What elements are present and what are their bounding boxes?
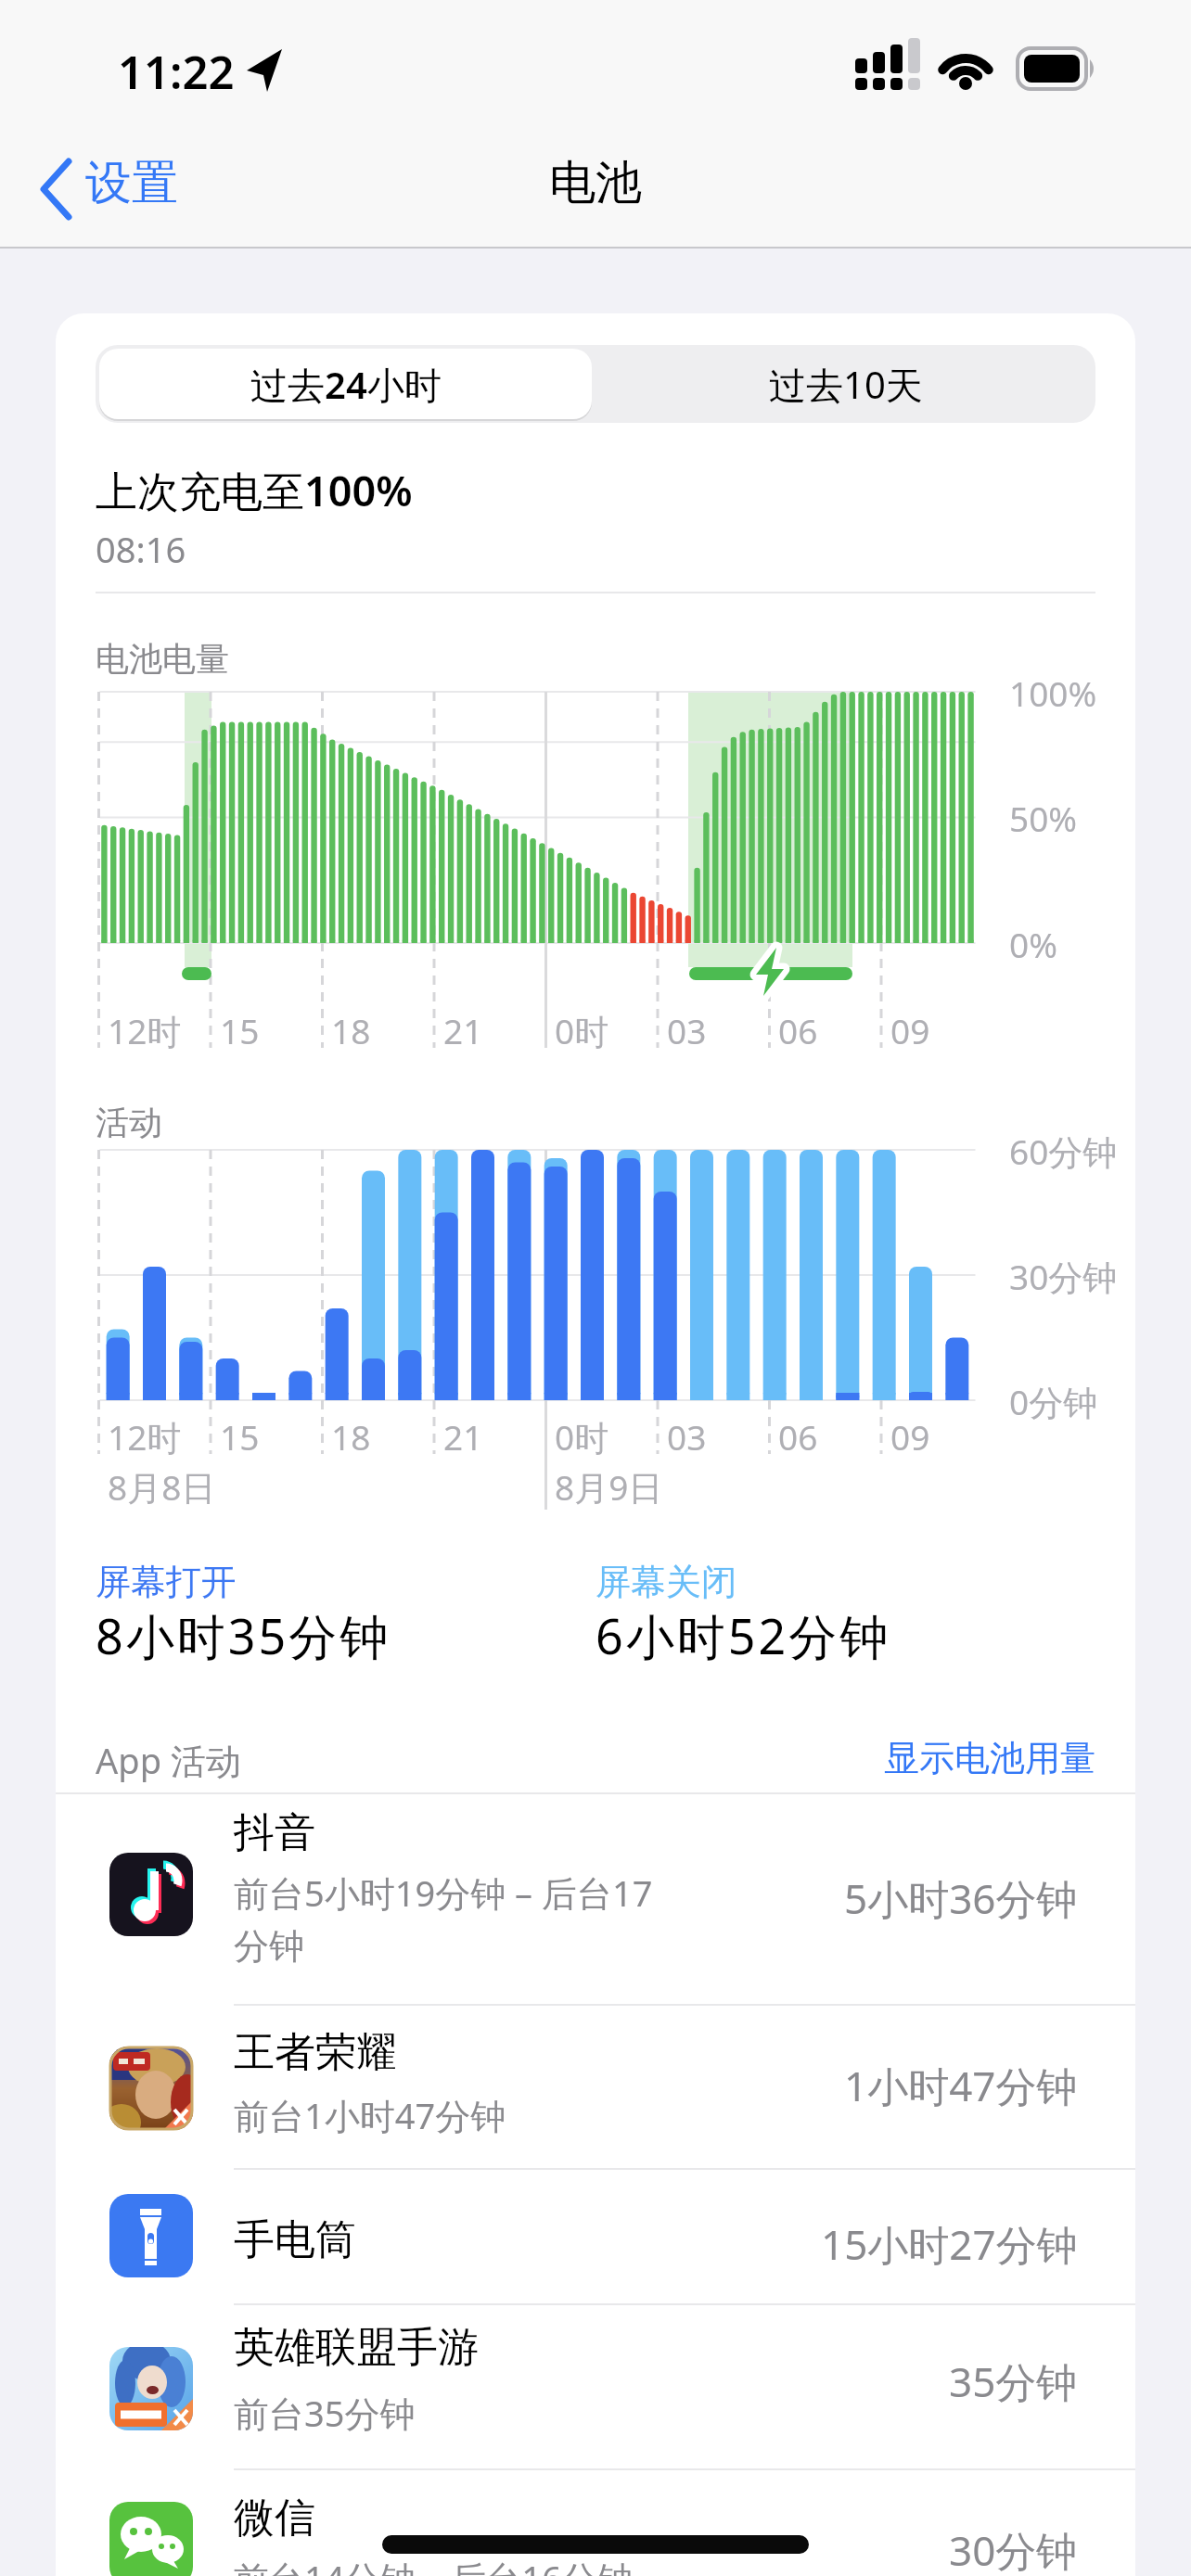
staticText: 过去24小时 [250,359,442,410]
staticText: 前台14分钟 – 后台16分钟 [234,2554,633,2576]
staticText: 21 [443,1007,483,1053]
staticText: 15 [220,1007,260,1053]
staticText: 屏幕关闭 [595,1560,736,1604]
staticText: 前台1小时47分钟 [234,2091,506,2139]
staticText: 8月8日 [108,1463,216,1511]
staticText: 活动 [96,1102,162,1143]
button[interactable]: 王者荣耀 [56,2006,1135,2168]
staticText: 0% [1009,921,1057,967]
staticText: 06 [778,1007,818,1053]
staticText: 分钟 [234,1924,304,1969]
button[interactable]: 英雄联盟手游 [56,2305,1135,2467]
button[interactable]: 微信 [56,2470,1135,2576]
staticText: 18 [331,1007,371,1053]
staticText: 6小时52分钟 [595,1602,891,1668]
staticText: 屏幕打开 [96,1560,237,1604]
staticText: App 活动 [96,1736,241,1784]
button[interactable]: 过去24小时 [96,345,595,423]
staticText: 0时 [555,1413,609,1460]
staticText: 15小时27分钟 [821,2216,1078,2272]
staticText: 设置 [85,154,178,212]
staticText: 03 [667,1007,707,1053]
staticText: 21 [443,1413,483,1460]
staticText: 06 [778,1413,818,1460]
staticText: 上次充电至100% [96,462,413,518]
staticText: 0时 [555,1007,609,1054]
staticText: 王者荣耀 [234,2027,397,2078]
staticText: 1小时47分钟 [844,2058,1078,2113]
staticText: 手电筒 [234,2214,356,2265]
staticText: 18 [331,1413,371,1460]
staticText: 微信 [234,2493,315,2544]
staticText: 抖音 [234,1807,315,1858]
staticText: 电池电量 [96,638,229,680]
button[interactable]: 显示电池用量 [724,1736,1095,1782]
staticText: 英雄联盟手游 [234,2322,479,2373]
button[interactable]: 过去10天 [595,345,1095,423]
staticText: 35分钟 [949,2353,1078,2409]
staticText: 11:22 [118,41,235,103]
staticText: 08:16 [96,525,186,573]
staticText: 8小时35分钟 [96,1602,391,1668]
staticText: 09 [890,1007,930,1053]
staticText: 100% [1009,670,1097,716]
staticText: 03 [667,1413,707,1460]
staticText: 50% [1009,795,1078,841]
button[interactable]: 设置 [28,148,241,232]
staticText: 前台35分钟 [234,2389,416,2437]
staticText: 12时 [108,1413,182,1460]
staticText: 09 [890,1413,930,1460]
staticText: 30分钟 [1009,1253,1118,1300]
staticText: 前台5小时19分钟 – 后台17 [234,1868,653,1917]
staticText: 30分钟 [949,2522,1078,2576]
staticText: 5小时36分钟 [844,1870,1078,1926]
button[interactable]: 抖音 [56,1794,1135,2004]
staticText: 显示电池用量 [884,1736,1095,1780]
staticText: 0分钟 [1009,1378,1098,1425]
staticText: 8月9日 [555,1463,663,1511]
staticText: 过去10天 [769,359,923,410]
staticText: 15 [220,1413,260,1460]
staticText: 12时 [108,1007,182,1054]
staticText: 电池 [549,154,642,212]
staticText: 60分钟 [1009,1128,1118,1175]
button[interactable]: 手电筒 [56,2170,1135,2303]
